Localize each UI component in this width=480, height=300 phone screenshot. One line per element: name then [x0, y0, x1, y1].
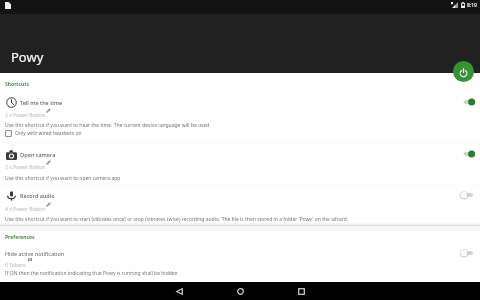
staticText: Tell me the time — [20, 99, 63, 106]
staticText: 0 Tokens — [5, 262, 26, 269]
button[interactable]: Switch off — [460, 247, 478, 259]
staticText: 2 x Power Button — [5, 112, 46, 119]
button[interactable]: Back — [165, 282, 193, 300]
staticText: Open camera — [20, 151, 56, 158]
button[interactable]: Only with wired headsets on — [0, 129, 480, 138]
staticText: 3 x Power Button — [5, 164, 46, 171]
staticText: Hide active notification — [5, 250, 65, 257]
staticText: 4 x Power Button — [5, 206, 46, 213]
button[interactable]: Record audio — [0, 189, 480, 201]
button[interactable]: Hide active notification — [0, 247, 480, 259]
staticText: Record audio — [20, 192, 55, 199]
staticText: If ON then the notification indicating t… — [5, 270, 178, 277]
staticText: Only with wired headsets on — [15, 130, 82, 137]
button[interactable]: Switch on — [460, 148, 478, 160]
button[interactable]: Switch off — [460, 189, 478, 201]
button[interactable]: Switch on — [460, 96, 478, 108]
button[interactable]: Open camera — [0, 148, 480, 160]
button[interactable]: Home — [226, 282, 254, 300]
staticText: Preferences — [5, 234, 35, 241]
staticText: 8:19 — [467, 2, 477, 9]
staticText: Shortcuts — [5, 81, 30, 88]
staticText: Powy — [11, 48, 44, 66]
staticText: Use this shortcut if you want to hear th… — [5, 122, 210, 129]
staticText: Use this shortcut if you want to start (… — [5, 216, 347, 223]
button[interactable]: Recents — [287, 282, 315, 300]
button[interactable]: Power — [453, 61, 474, 82]
button[interactable]: Tell me the time — [0, 96, 480, 108]
staticText: Use this shortcut if you want to open ca… — [5, 175, 121, 182]
